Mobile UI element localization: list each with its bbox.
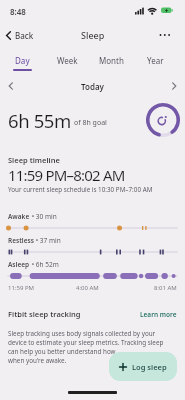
staticText: Month bbox=[99, 55, 124, 66]
button[interactable]: Log sleep bbox=[109, 352, 177, 381]
staticText: Day bbox=[15, 55, 30, 66]
staticText: Back bbox=[15, 30, 34, 41]
staticText: Week bbox=[57, 55, 78, 66]
staticText: Your current sleep schedule is 10:30 PM–… bbox=[8, 185, 153, 194]
staticText: 6h 55m bbox=[8, 108, 71, 133]
staticText: Sleep tracking uses body signals collect… bbox=[8, 329, 164, 365]
staticText: • 37 min bbox=[34, 236, 61, 245]
staticText: 8:48 bbox=[10, 6, 26, 17]
button[interactable]: Back bbox=[5, 30, 34, 41]
staticText: Sleep timeline bbox=[8, 155, 60, 165]
button[interactable]: Month bbox=[89, 48, 133, 69]
staticText: Today bbox=[81, 81, 104, 92]
staticText: Awake bbox=[8, 212, 30, 221]
staticText: Fitbit sleep tracking bbox=[8, 309, 81, 319]
button[interactable] bbox=[171, 82, 177, 90]
staticText: Asleep bbox=[8, 260, 30, 269]
staticText: • 6h 52m bbox=[30, 260, 59, 269]
staticText: Sleep bbox=[81, 29, 105, 41]
staticText: 11:59 PM bbox=[8, 284, 34, 292]
button[interactable] bbox=[159, 33, 171, 37]
staticText: 4:00 AM bbox=[76, 284, 99, 292]
button[interactable]: Year bbox=[133, 48, 177, 69]
staticText: 8:01 AM bbox=[154, 284, 177, 292]
staticText: 11:59 PM–8:02 AM bbox=[8, 165, 125, 185]
button[interactable]: Learn more bbox=[140, 310, 177, 319]
button[interactable] bbox=[146, 103, 180, 137]
button[interactable]: Day bbox=[0, 48, 45, 71]
staticText: of 8h goal bbox=[74, 118, 107, 128]
button[interactable] bbox=[8, 82, 14, 90]
staticText: • 30 min bbox=[30, 212, 57, 221]
staticText: Restless bbox=[8, 236, 34, 245]
staticText: Log sleep bbox=[132, 362, 167, 372]
button[interactable]: Week bbox=[45, 48, 89, 69]
staticText: Year bbox=[147, 55, 164, 66]
